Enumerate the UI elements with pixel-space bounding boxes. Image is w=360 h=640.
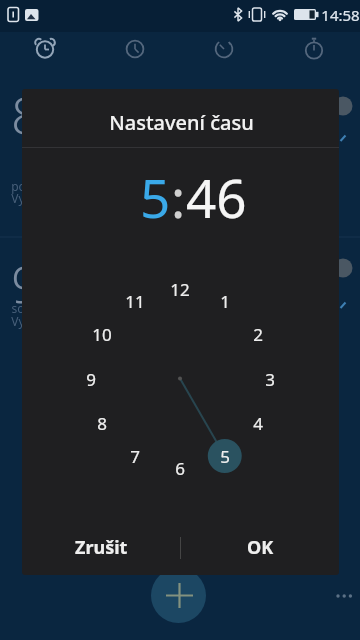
staticText: 3 <box>265 368 275 391</box>
staticText: 1 <box>220 290 230 313</box>
staticText: 12 <box>170 278 190 301</box>
staticText: : <box>171 161 186 225</box>
staticText: 6 <box>175 457 185 480</box>
button[interactable] <box>180 32 270 72</box>
staticText: 2 <box>253 323 263 346</box>
button[interactable]: OK <box>181 520 339 575</box>
staticText: Vy <box>11 313 25 329</box>
button[interactable]: 3 <box>253 367 287 391</box>
button[interactable] <box>90 32 180 72</box>
button[interactable]: 7 <box>118 444 152 468</box>
staticText: Vy <box>11 190 25 206</box>
button[interactable]: 10 <box>85 322 119 346</box>
button[interactable] <box>151 568 206 623</box>
staticText: Zrušit <box>75 535 128 560</box>
staticText: 8 <box>97 412 107 435</box>
staticText: so <box>11 300 25 316</box>
staticText: 9 <box>86 368 96 391</box>
staticText: OK <box>247 535 274 560</box>
staticText: 46 <box>186 161 247 225</box>
button[interactable]: 4 <box>241 411 275 435</box>
staticText: 11 <box>125 290 145 313</box>
staticText: 4 <box>253 412 263 435</box>
staticText: 7 <box>130 445 140 468</box>
button[interactable] <box>0 32 90 72</box>
button[interactable]: 11 <box>118 289 152 313</box>
staticText: 14:58 <box>321 5 360 25</box>
button[interactable]: 5 <box>208 444 242 468</box>
button[interactable]: 9 <box>74 367 108 391</box>
staticText: Nastavení času <box>109 109 254 136</box>
button[interactable]: 2 <box>241 322 275 346</box>
button[interactable]: 6 <box>163 456 197 480</box>
button[interactable]: 8 <box>85 411 119 435</box>
button[interactable] <box>270 32 360 72</box>
staticText: 5 <box>220 445 230 468</box>
staticText: 10 <box>92 323 112 346</box>
button[interactable]: 12 <box>163 277 197 301</box>
staticText: 5 <box>140 161 171 225</box>
staticText: 8 <box>11 81 40 141</box>
staticText: po <box>11 178 26 194</box>
button[interactable]: 1 <box>208 289 242 313</box>
staticText: 9 <box>11 250 40 310</box>
button[interactable]: Zrušit <box>22 520 180 575</box>
